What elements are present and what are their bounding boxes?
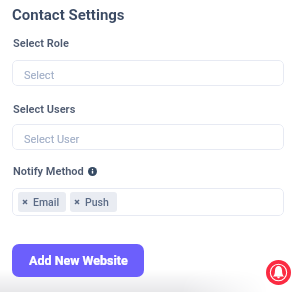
button[interactable]: Notifications: [266, 260, 291, 285]
staticText: Email: [33, 196, 60, 208]
staticText: Notify Method: [13, 165, 84, 178]
staticText: Select Users: [13, 103, 76, 116]
button[interactable]: Select: [12, 60, 284, 86]
button[interactable]: Select User: [12, 124, 284, 150]
button[interactable]: Add New Website: [12, 244, 144, 277]
staticText: Select Role: [13, 37, 69, 50]
staticText: Select: [24, 69, 55, 82]
button[interactable]: Email: [23, 192, 61, 212]
staticText: Add New Website: [29, 253, 128, 268]
staticText: Select User: [24, 133, 80, 146]
staticText: Contact Settings: [12, 6, 125, 24]
button[interactable]: Push: [75, 192, 112, 212]
staticText: Push: [85, 196, 109, 208]
